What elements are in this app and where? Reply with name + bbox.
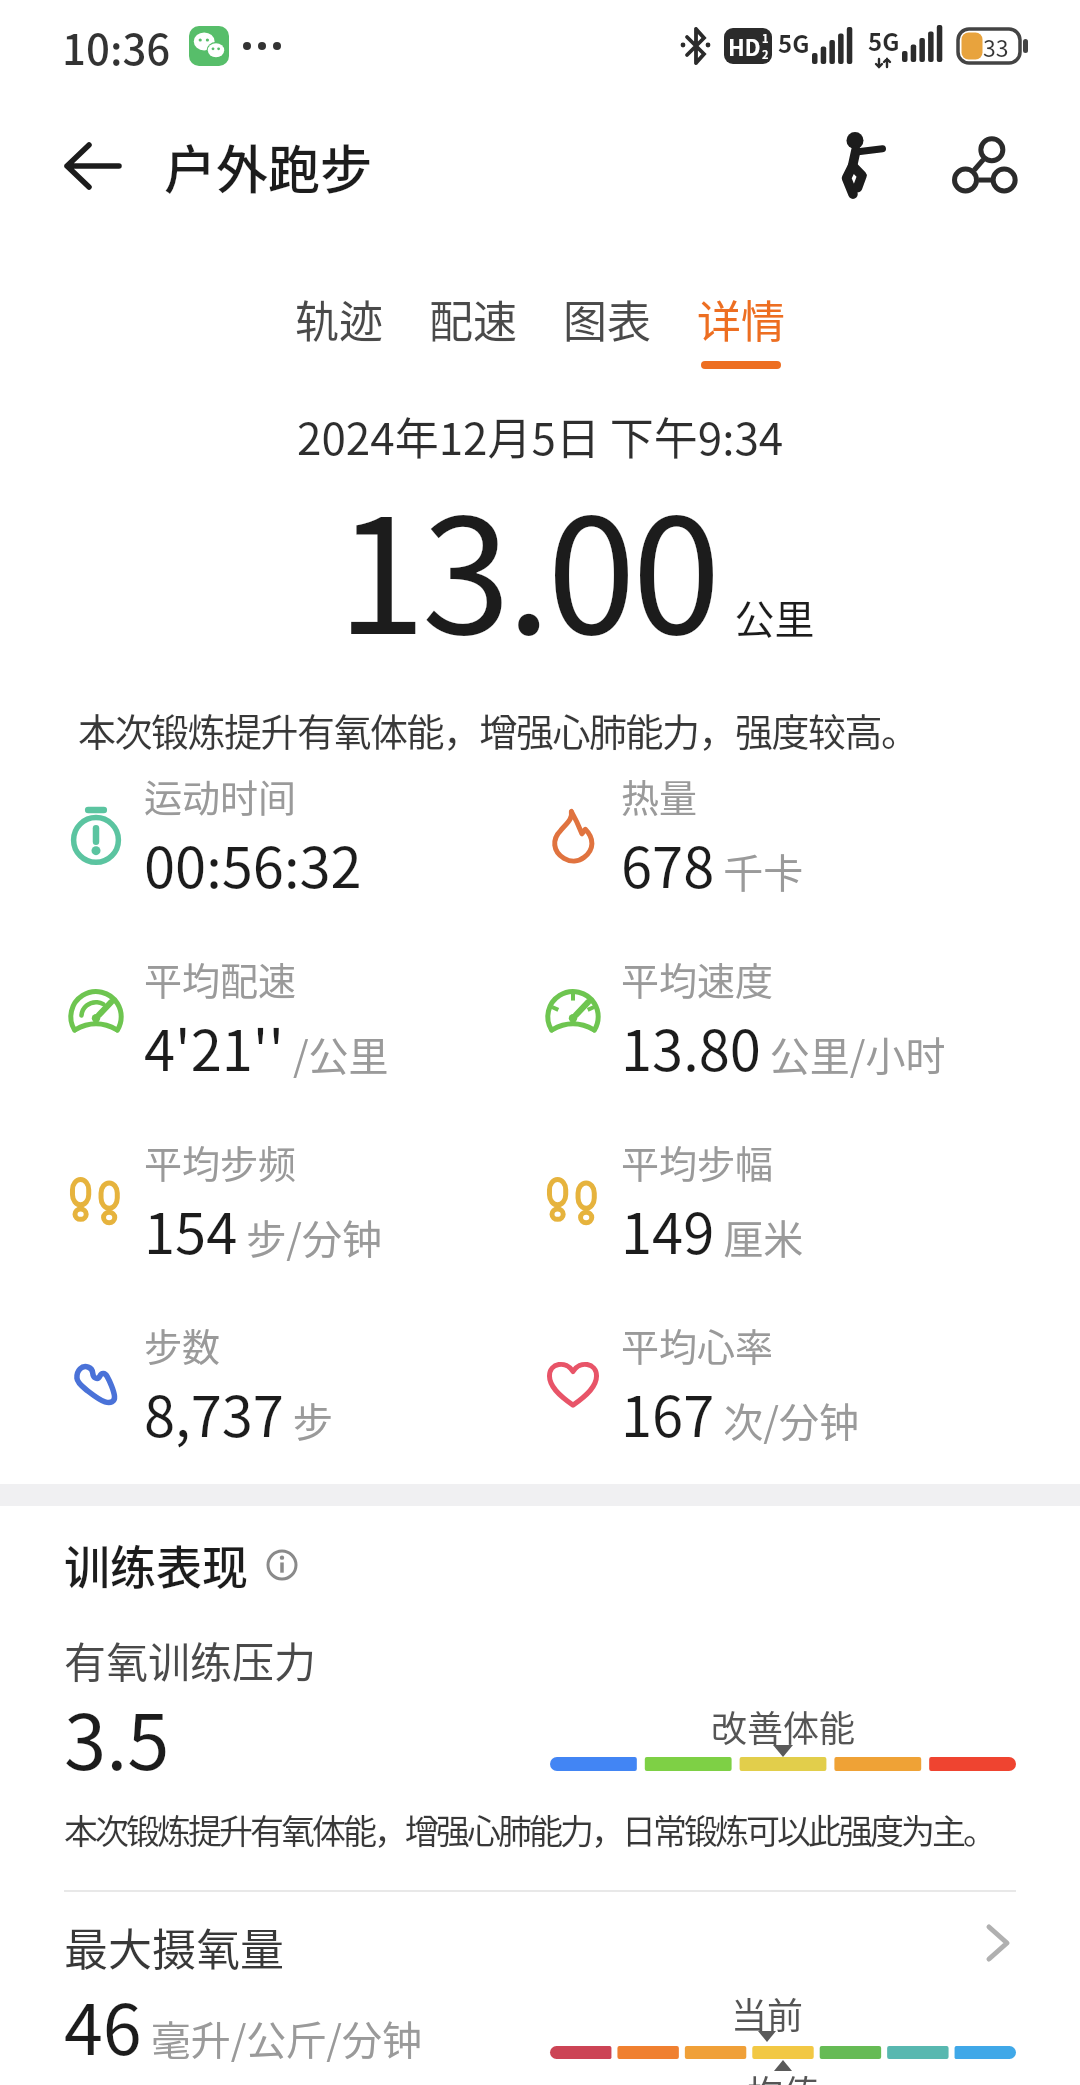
button[interactable] xyxy=(64,143,122,189)
staticText: 4'21'' /公里 xyxy=(144,1006,389,1087)
button[interactable] xyxy=(266,1549,298,1581)
staticText: 配速 xyxy=(429,287,517,351)
button[interactable]: 平均步幅 xyxy=(545,1110,804,1293)
staticText: 平均配速 xyxy=(144,951,297,1006)
button[interactable]: 平均速度 xyxy=(545,927,946,1110)
staticText: 平均步幅 xyxy=(621,1134,774,1189)
staticText: HD xyxy=(728,30,761,62)
staticText: 图表 xyxy=(563,287,651,351)
button[interactable] xyxy=(834,134,884,198)
button[interactable]: 热量 xyxy=(545,744,804,927)
staticText: 步数 xyxy=(144,1317,221,1372)
button[interactable]: 平均心率 xyxy=(545,1293,859,1476)
staticText: 平均步频 xyxy=(144,1134,297,1189)
button[interactable]: 图表 xyxy=(563,287,651,369)
staticText: 10:36 xyxy=(62,16,171,77)
button[interactable]: 轨迹 xyxy=(295,287,383,369)
staticText: 8,737 步 xyxy=(144,1372,333,1453)
staticText: 154 步/分钟 xyxy=(144,1189,382,1270)
staticText: 2024年12月5日 下午9:34 xyxy=(297,404,784,468)
staticText: 轨迹 xyxy=(295,287,383,351)
staticText: 本次锻炼提升有氧体能，增强心肺能力，日常锻炼可以此强度为主。 xyxy=(64,1805,994,1854)
staticText: 户外跑步 xyxy=(164,129,373,204)
staticText: 13.80 公里/小时 xyxy=(621,1006,946,1087)
staticText: 均值 xyxy=(747,2065,820,2085)
staticText: 2 xyxy=(762,46,769,62)
staticText: 当前 xyxy=(731,1987,804,2039)
staticText: 运动时间 xyxy=(144,768,297,823)
staticText: 改善体能 xyxy=(711,1700,856,1752)
staticText: 678 千卡 xyxy=(621,823,804,904)
button[interactable]: 平均配速 xyxy=(68,927,389,1110)
button[interactable]: 平均步频 xyxy=(68,1110,382,1293)
staticText: 33 xyxy=(983,30,1009,63)
button[interactable]: 最大摄氧量 xyxy=(0,1912,1080,1974)
staticText: 本次锻炼提升有氧体能，增强心肺能力，强度较高。 xyxy=(78,702,918,757)
staticText: 详情 xyxy=(697,287,785,351)
button[interactable]: 详情 xyxy=(697,287,785,369)
staticText: 1 xyxy=(762,30,769,46)
staticText: 5G xyxy=(778,25,810,60)
staticText: 149 厘米 xyxy=(621,1189,804,1270)
button[interactable]: 配速 xyxy=(429,287,517,369)
staticText: 00:56:32 xyxy=(144,823,362,904)
staticText: 平均速度 xyxy=(621,951,774,1006)
staticText: 最大摄氧量 xyxy=(64,1915,284,1977)
staticText: 46 毫升/公斤/分钟 xyxy=(64,1974,423,2075)
staticText: 平均心率 xyxy=(621,1317,774,1372)
staticText: 训练表现 xyxy=(64,1531,248,1598)
staticText: 167 次/分钟 xyxy=(621,1372,859,1453)
staticText: 5G xyxy=(868,23,900,58)
staticText: 3.5 xyxy=(64,1682,170,1792)
button[interactable]: 步数 xyxy=(68,1293,333,1476)
button[interactable]: 运动时间 xyxy=(68,744,362,927)
button[interactable] xyxy=(956,139,1012,193)
staticText: 有氧训练压力 xyxy=(64,1629,317,1690)
staticText: 13.00 公里 xyxy=(337,448,815,680)
staticText: 热量 xyxy=(621,768,698,823)
